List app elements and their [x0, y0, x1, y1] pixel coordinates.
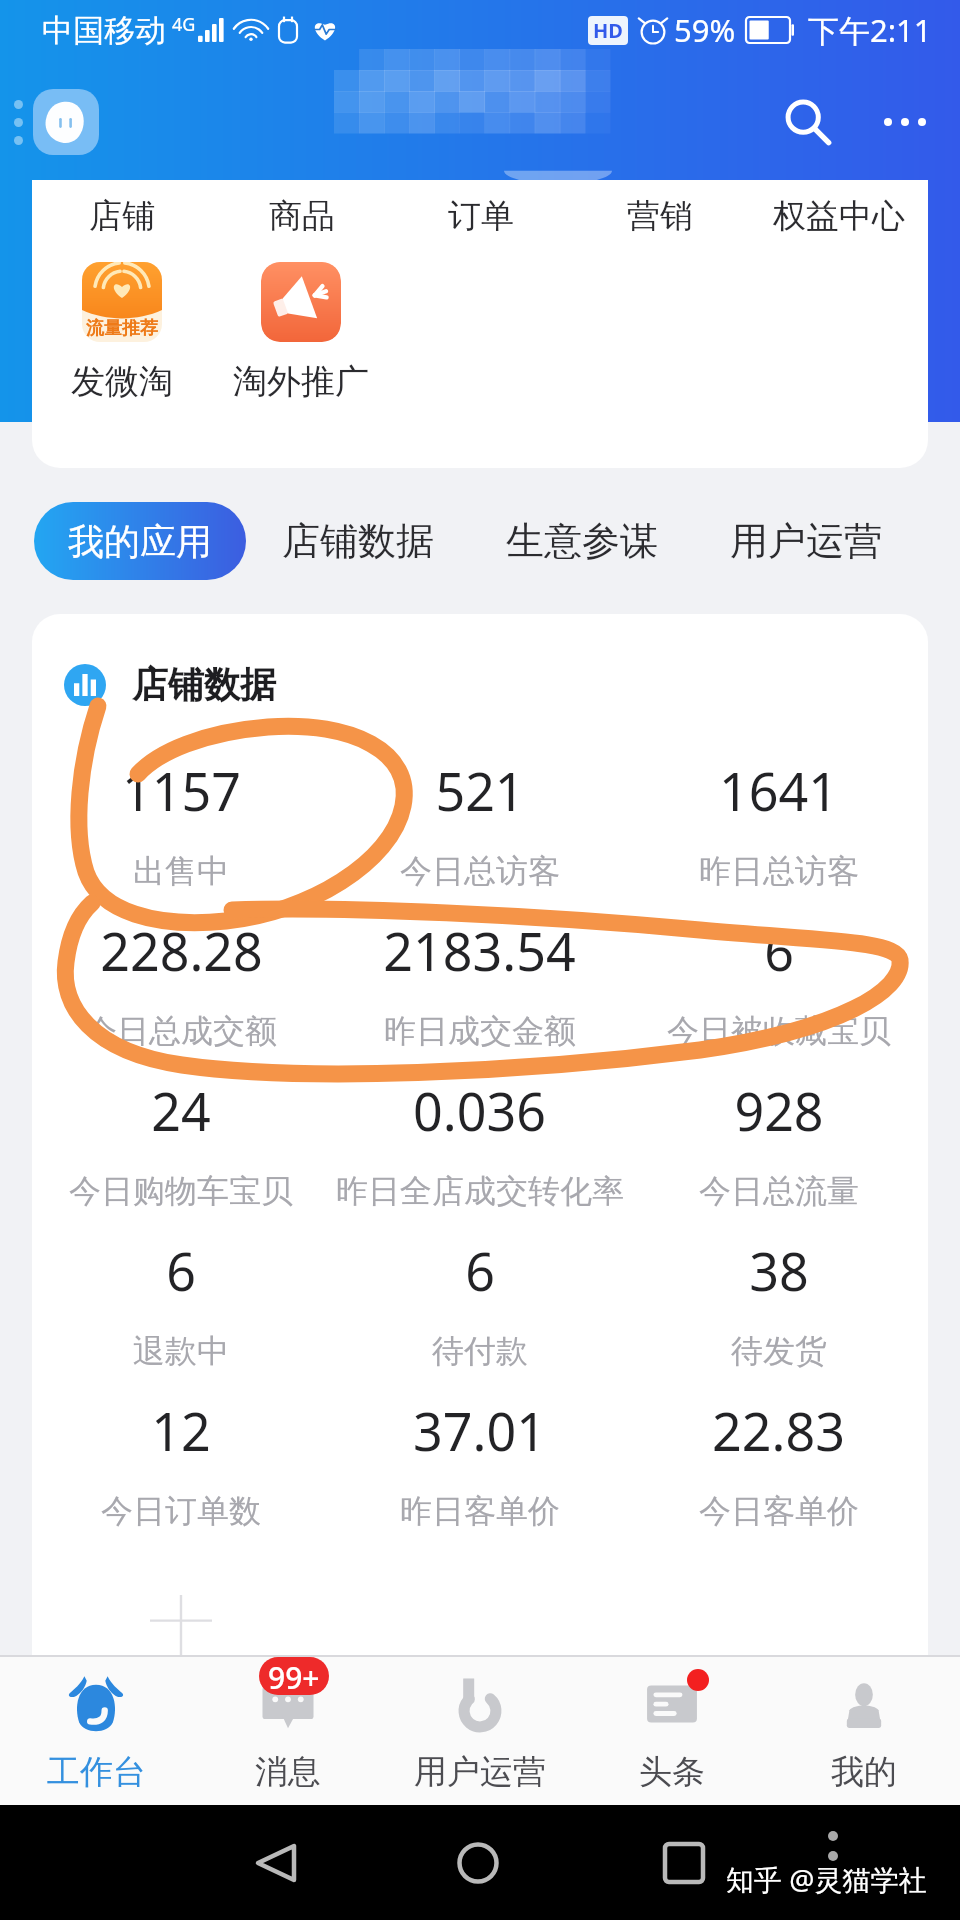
button[interactable]: 淘外推广: [211, 262, 390, 403]
staticText: 12: [151, 1395, 211, 1466]
staticText: 今日购物车宝贝: [69, 1171, 293, 1211]
staticText: 消息: [255, 1751, 321, 1793]
staticText: 出售中: [133, 851, 229, 891]
button[interactable]: 用户运营: [384, 1657, 576, 1805]
staticText: 待付款: [432, 1331, 528, 1371]
staticText: 店铺数据: [282, 517, 434, 565]
staticText: 59%: [674, 9, 736, 51]
staticText: 昨日全店成交转化率: [336, 1171, 624, 1211]
staticText: 0.036: [413, 1075, 546, 1146]
button[interactable]: 生意参谋: [470, 502, 694, 580]
staticText: 下午2:11: [808, 9, 932, 51]
staticText: 昨日成交金额: [384, 1011, 576, 1051]
staticText: 商品: [269, 195, 335, 237]
staticText: 2183.54: [383, 915, 576, 986]
staticText: 928: [734, 1075, 824, 1146]
staticText: 6: [166, 1235, 196, 1306]
staticText: 今日被收藏宝贝: [667, 1011, 891, 1051]
staticText: 订单: [448, 195, 514, 237]
staticText: 1157: [122, 755, 241, 826]
button[interactable]: Home: [430, 1815, 526, 1911]
staticText: 店铺数据: [132, 662, 276, 707]
staticText: 今日订单数: [101, 1491, 261, 1531]
staticText: HD: [593, 17, 623, 44]
staticText: 流量推荐: [86, 317, 158, 340]
staticText: 521: [435, 755, 525, 826]
staticText: 今日客单价: [699, 1491, 859, 1531]
button[interactable]: 商品: [212, 184, 391, 248]
staticText: 昨日客单价: [400, 1491, 560, 1531]
staticText: 头条: [639, 1751, 705, 1793]
button[interactable]: Shop avatar: [33, 89, 99, 155]
button[interactable]: 营销: [570, 184, 749, 248]
button[interactable]: 工作台: [0, 1657, 192, 1805]
staticText: 6: [764, 915, 794, 986]
staticText: 37.01: [413, 1395, 546, 1466]
staticText: 今日总流量: [699, 1171, 859, 1211]
staticText: 权益中心: [773, 195, 905, 237]
staticText: 淘外推广: [233, 360, 369, 403]
staticText: 店铺: [89, 195, 155, 237]
button[interactable]: 99+: [192, 1657, 384, 1805]
button[interactable]: 订单: [391, 184, 570, 248]
button[interactable]: Back: [228, 1815, 324, 1911]
staticText: 99+: [268, 1657, 320, 1695]
staticText: 今日总成交额: [85, 1011, 277, 1051]
button[interactable]: 用户运营: [694, 502, 918, 580]
staticText: 今日总访客: [400, 851, 560, 891]
staticText: 我的: [831, 1751, 897, 1793]
staticText: 用户运营: [414, 1751, 546, 1793]
staticText: 1641: [719, 755, 838, 826]
button[interactable]: 我的: [768, 1657, 960, 1805]
staticText: 228.28: [100, 915, 263, 986]
button[interactable]: 店铺: [32, 184, 212, 248]
staticText: 待发货: [731, 1331, 827, 1371]
staticText: 4G: [172, 12, 196, 37]
staticText: 退款中: [133, 1331, 229, 1371]
staticText: 用户运营: [730, 517, 882, 565]
staticText: 知乎 @灵猫学社: [726, 1860, 927, 1898]
staticText: 工作台: [47, 1751, 146, 1793]
staticText: 昨日总访客: [699, 851, 859, 891]
staticText: 我的应用: [68, 519, 212, 564]
staticText: 24: [151, 1075, 211, 1146]
button[interactable]: 头条: [576, 1657, 768, 1805]
button[interactable]: Search: [760, 74, 856, 170]
staticText: 38: [749, 1235, 809, 1306]
button[interactable]: 店铺数据: [246, 502, 470, 580]
staticText: 6: [465, 1235, 495, 1306]
button[interactable]: More options: [857, 74, 953, 170]
button[interactable]: 流量推荐: [32, 262, 211, 403]
button[interactable]: 我的应用: [34, 502, 246, 580]
staticText: 发微淘: [71, 360, 173, 403]
button[interactable]: Recents: [636, 1815, 732, 1911]
staticText: 中国移动: [42, 11, 166, 50]
staticText: 营销: [627, 195, 693, 237]
button[interactable]: 权益中心: [749, 184, 928, 248]
staticText: 生意参谋: [506, 517, 658, 565]
staticText: 22.83: [712, 1395, 845, 1466]
